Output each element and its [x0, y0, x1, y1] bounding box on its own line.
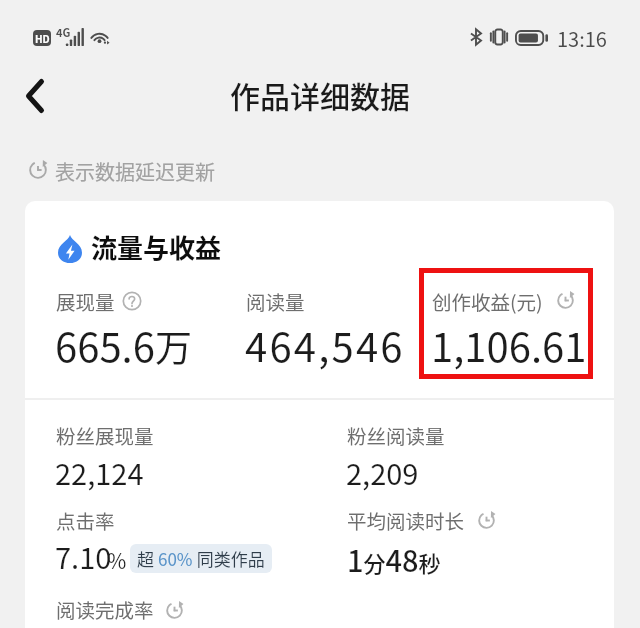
staticText: 665.6万 — [55, 316, 192, 374]
staticText: 阅读量 — [246, 287, 305, 315]
staticText: 22,124 — [55, 451, 144, 493]
button[interactable]: Back — [7, 68, 63, 124]
staticText: 同类作品 — [193, 546, 265, 571]
staticText: 平均阅读时长 — [347, 506, 465, 534]
staticText: 7.10 — [55, 535, 112, 577]
staticText: 点击率 — [56, 506, 115, 534]
staticText: 作品详细数据 — [230, 73, 410, 116]
staticText: 1,106.61 — [431, 316, 587, 374]
staticText: 60% — [158, 546, 193, 571]
staticText: 粉丝阅读量 — [347, 421, 445, 449]
staticText: 阅读完成率 — [56, 595, 154, 623]
staticText: 粉丝展现量 — [56, 421, 154, 449]
staticText: 2,209 — [346, 451, 419, 493]
staticText: 1分48秒 — [347, 538, 441, 580]
staticText: 流量与收益 — [91, 228, 222, 266]
staticText: HD — [35, 31, 50, 45]
staticText: 超 — [137, 546, 158, 571]
staticText: 表示数据延迟更新 — [55, 157, 215, 186]
staticText: 13:16 — [557, 24, 607, 53]
button[interactable]: 超 — [130, 544, 272, 573]
staticText: 464,546 — [245, 316, 405, 374]
staticText: 展现量 — [56, 287, 115, 315]
staticText: % — [107, 545, 127, 575]
staticText: 创作收益(元) — [432, 287, 543, 315]
staticText: 4G — [56, 24, 71, 40]
